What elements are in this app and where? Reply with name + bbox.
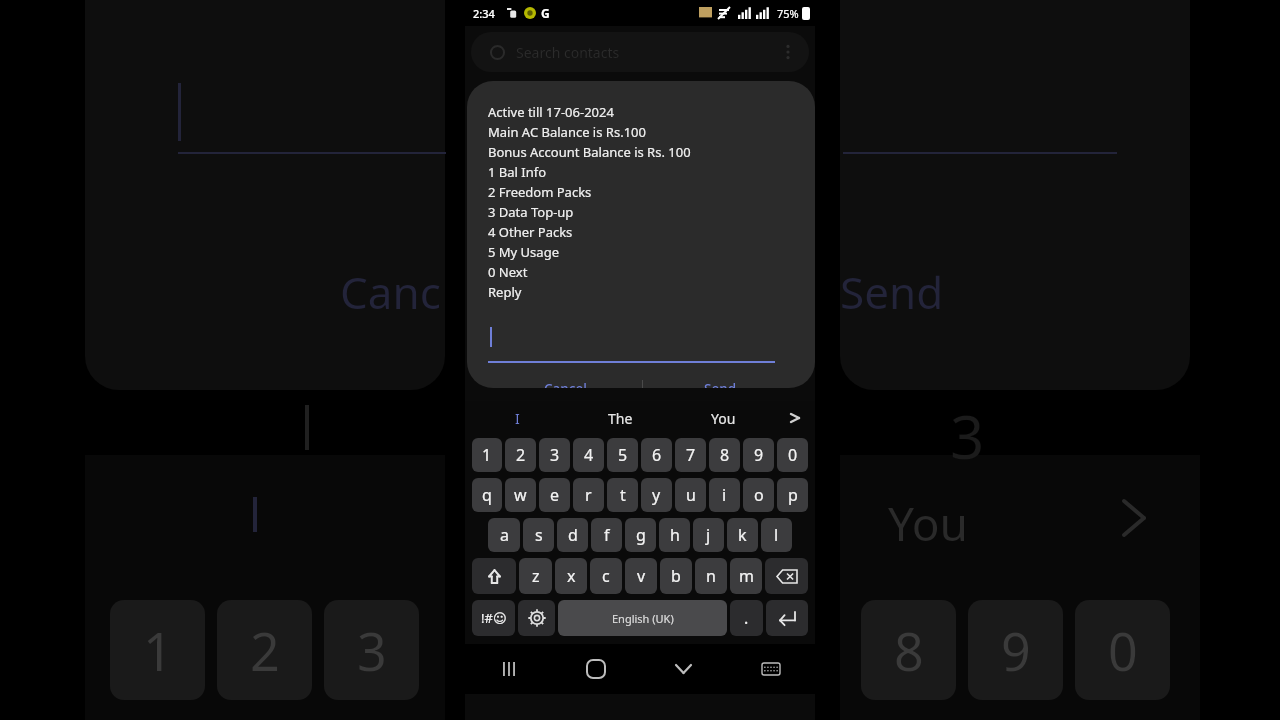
staticText: s xyxy=(535,524,543,546)
button[interactable]: You xyxy=(672,401,775,435)
button[interactable]: f xyxy=(591,518,622,552)
staticText: 9 xyxy=(1001,615,1031,686)
staticText: b xyxy=(671,565,681,587)
staticText: You xyxy=(711,409,736,428)
staticText: j xyxy=(706,524,711,546)
button[interactable]: 5 xyxy=(607,438,638,472)
staticText: 9 xyxy=(754,444,764,466)
staticText: You xyxy=(888,492,968,555)
button[interactable]: k xyxy=(727,518,758,552)
button[interactable]: u xyxy=(675,478,706,512)
button[interactable]: c xyxy=(590,558,622,594)
button[interactable]: r xyxy=(573,478,604,512)
staticText: Active till 17-06-2024 xyxy=(488,103,614,121)
button[interactable]: x xyxy=(555,558,587,594)
button[interactable]: 3 xyxy=(539,438,570,472)
button[interactable]: q xyxy=(472,478,502,512)
staticText: 5 My Usage xyxy=(488,243,559,261)
staticText: m xyxy=(739,565,754,587)
button[interactable]: 7 xyxy=(675,438,706,472)
staticText: o xyxy=(754,484,764,506)
staticText: t xyxy=(620,484,626,506)
staticText: The xyxy=(608,409,633,428)
button[interactable]: w xyxy=(505,478,536,512)
staticText: Reply xyxy=(488,283,522,301)
button[interactable]: More suggestions xyxy=(775,401,815,435)
button[interactable]: 0 xyxy=(777,438,808,472)
button[interactable]: n xyxy=(695,558,727,594)
staticText: 4 xyxy=(584,444,594,466)
staticText: I xyxy=(515,409,520,428)
button[interactable]: l xyxy=(761,518,792,552)
button[interactable]: g xyxy=(625,518,656,552)
staticText: G xyxy=(541,5,550,21)
staticText: e xyxy=(550,484,560,506)
staticText: . xyxy=(744,607,749,629)
staticText: 7 xyxy=(686,444,696,466)
button[interactable]: 2 xyxy=(505,438,536,472)
staticText: u xyxy=(686,484,696,506)
button[interactable]: i xyxy=(709,478,740,512)
button[interactable]: More options xyxy=(777,41,799,63)
button[interactable]: a xyxy=(488,518,520,552)
button[interactable]: Shift xyxy=(472,558,516,594)
button[interactable]: h xyxy=(659,518,690,552)
button[interactable]: z xyxy=(519,558,552,594)
button[interactable]: Send xyxy=(643,380,797,388)
staticText: 5 xyxy=(618,444,628,466)
button[interactable]: b xyxy=(660,558,692,594)
staticText: 1 xyxy=(143,615,173,686)
staticText: English (UK) xyxy=(612,611,674,626)
button[interactable]: 4 xyxy=(573,438,604,472)
button[interactable]: Recents xyxy=(465,644,552,694)
staticText: y xyxy=(652,484,661,506)
staticText: 2:34 xyxy=(473,6,495,21)
staticText: q xyxy=(482,484,492,506)
staticText: n xyxy=(706,565,716,587)
button[interactable]: Settings xyxy=(518,600,555,636)
button[interactable]: !#☺ xyxy=(472,600,515,636)
staticText: 3 xyxy=(550,444,560,466)
button[interactable]: e xyxy=(539,478,570,512)
staticText: 8 xyxy=(894,615,924,686)
button[interactable]: 8 xyxy=(709,438,740,472)
staticText: Main AC Balance is Rs.100 xyxy=(488,123,646,141)
button[interactable]: y xyxy=(641,478,672,512)
staticText: Cancel xyxy=(544,380,587,388)
staticText: w xyxy=(514,484,527,506)
button[interactable]: Cancel xyxy=(488,380,642,388)
button[interactable]: t xyxy=(607,478,638,512)
button[interactable]: 1 xyxy=(472,438,502,472)
staticText: Search contacts xyxy=(516,43,620,62)
button[interactable]: Search contacts xyxy=(471,32,809,72)
staticText: z xyxy=(532,565,540,587)
staticText: 2 Freedom Packs xyxy=(488,183,592,201)
button[interactable]: Hide keyboard xyxy=(639,644,727,694)
button[interactable]: The xyxy=(569,401,672,435)
button[interactable]: m xyxy=(730,558,762,594)
button[interactable]: Home xyxy=(552,644,639,694)
button[interactable]: p xyxy=(777,478,808,512)
button[interactable]: Enter xyxy=(766,600,808,636)
staticText: 0 xyxy=(1108,615,1138,686)
button[interactable]: o xyxy=(743,478,774,512)
staticText: 1 Bal Info xyxy=(488,163,547,181)
button[interactable]: 6 xyxy=(641,438,672,472)
button[interactable]: . xyxy=(730,600,763,636)
button[interactable]: English (UK) xyxy=(558,600,727,636)
staticText: a xyxy=(500,524,509,546)
button[interactable]: I xyxy=(465,401,569,435)
button[interactable]: v xyxy=(625,558,657,594)
button[interactable]: Backspace xyxy=(765,558,808,594)
staticText: k xyxy=(738,524,747,546)
staticText: Send xyxy=(840,262,944,322)
staticText: Bonus Account Balance is Rs. 100 xyxy=(488,143,691,161)
button[interactable]: s xyxy=(523,518,554,552)
staticText: 4 Other Packs xyxy=(488,223,573,241)
staticText: 1 xyxy=(482,444,492,466)
staticText: h xyxy=(670,524,680,546)
button[interactable]: 9 xyxy=(743,438,774,472)
button[interactable]: d xyxy=(557,518,588,552)
button[interactable]: j xyxy=(693,518,724,552)
button[interactable]: Keyboard xyxy=(727,644,815,694)
